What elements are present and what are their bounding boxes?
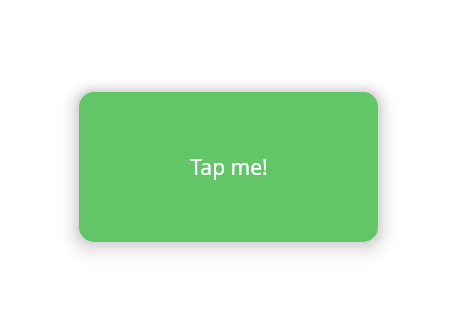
button[interactable]: Tap me! [79, 92, 378, 242]
staticText: Tap me! [190, 153, 268, 182]
